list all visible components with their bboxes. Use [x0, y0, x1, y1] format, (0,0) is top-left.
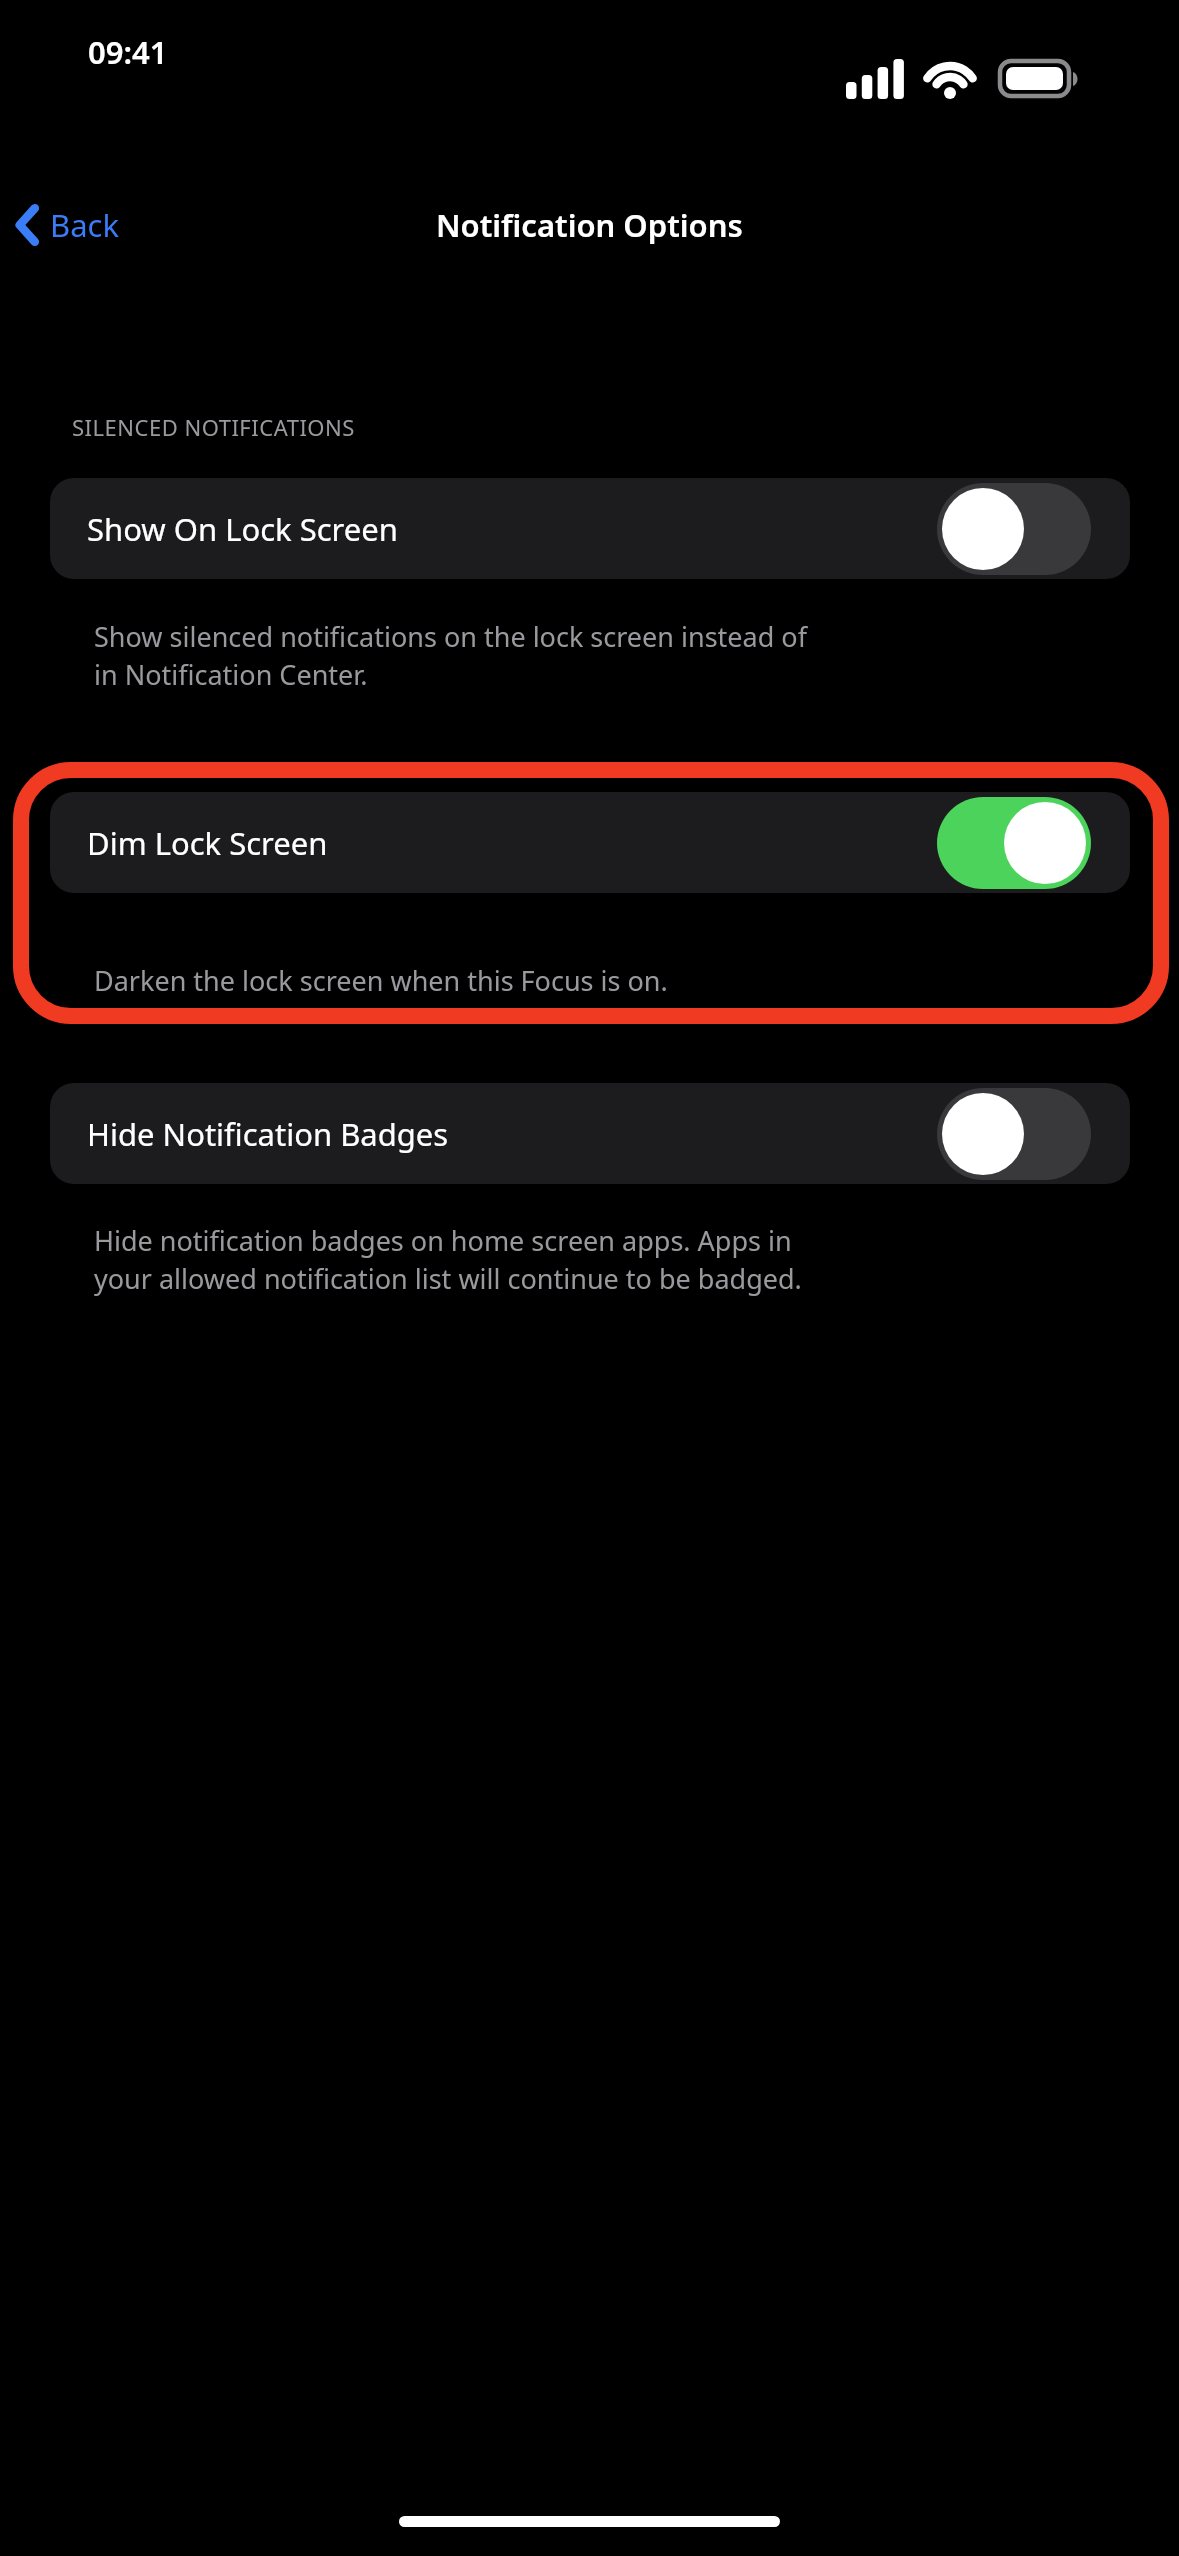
staticText: Show On Lock Screen [87, 508, 937, 550]
staticText: Hide Notification Badges [87, 1113, 937, 1155]
staticText: Show silenced notifications on the lock … [94, 618, 807, 693]
staticText: Notification Options [436, 204, 743, 246]
staticText: SILENCED NOTIFICATIONS [72, 412, 355, 442]
button[interactable]: Show On Lock Screen off [937, 483, 1091, 575]
button[interactable]: Show On Lock Screen [50, 478, 1130, 579]
staticText: 09:41 [88, 31, 168, 73]
staticText: Dim Lock Screen [87, 822, 937, 864]
staticText: Back [50, 204, 119, 246]
staticText: Darken the lock screen when this Focus i… [94, 962, 668, 999]
button[interactable]: Hide Notification Badges [50, 1083, 1130, 1184]
button[interactable]: Back [6, 194, 133, 256]
staticText: Hide notification badges on home screen … [94, 1222, 802, 1297]
button[interactable]: Hide Notification Badges off [937, 1088, 1091, 1180]
button[interactable]: Dim Lock Screen [50, 792, 1130, 893]
button[interactable]: Dim Lock Screen on [937, 797, 1091, 889]
